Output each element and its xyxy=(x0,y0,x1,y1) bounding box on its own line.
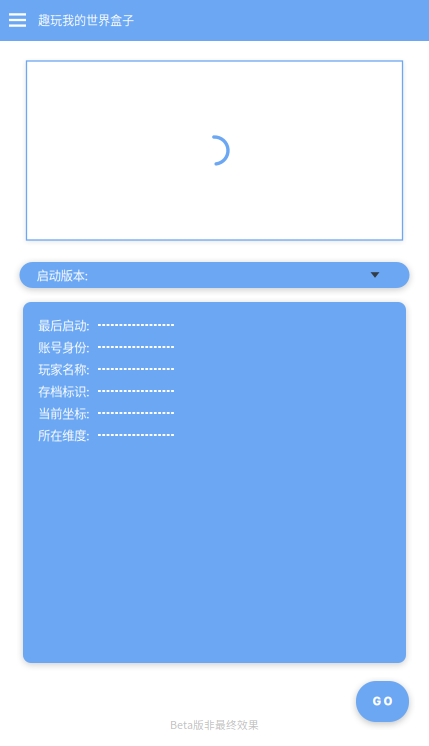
staticText: 启动版本: xyxy=(36,266,87,284)
staticText: 当前坐标: xyxy=(38,404,89,422)
staticText: 趣玩我的世界盒子 xyxy=(38,11,134,29)
staticText: 所在维度: xyxy=(38,426,89,444)
button[interactable]: Menu xyxy=(0,0,38,41)
staticText: 玩家名称: xyxy=(38,360,89,378)
staticText: 存档标识: xyxy=(38,382,89,400)
button[interactable]: 启动版本: xyxy=(19,262,409,288)
staticText: Beta版非最终效果 xyxy=(170,717,259,732)
button[interactable]: G O xyxy=(356,681,409,722)
staticText: 账号身份: xyxy=(38,338,89,356)
staticText: 最后启动: xyxy=(38,316,89,334)
staticText: G O xyxy=(372,695,392,708)
